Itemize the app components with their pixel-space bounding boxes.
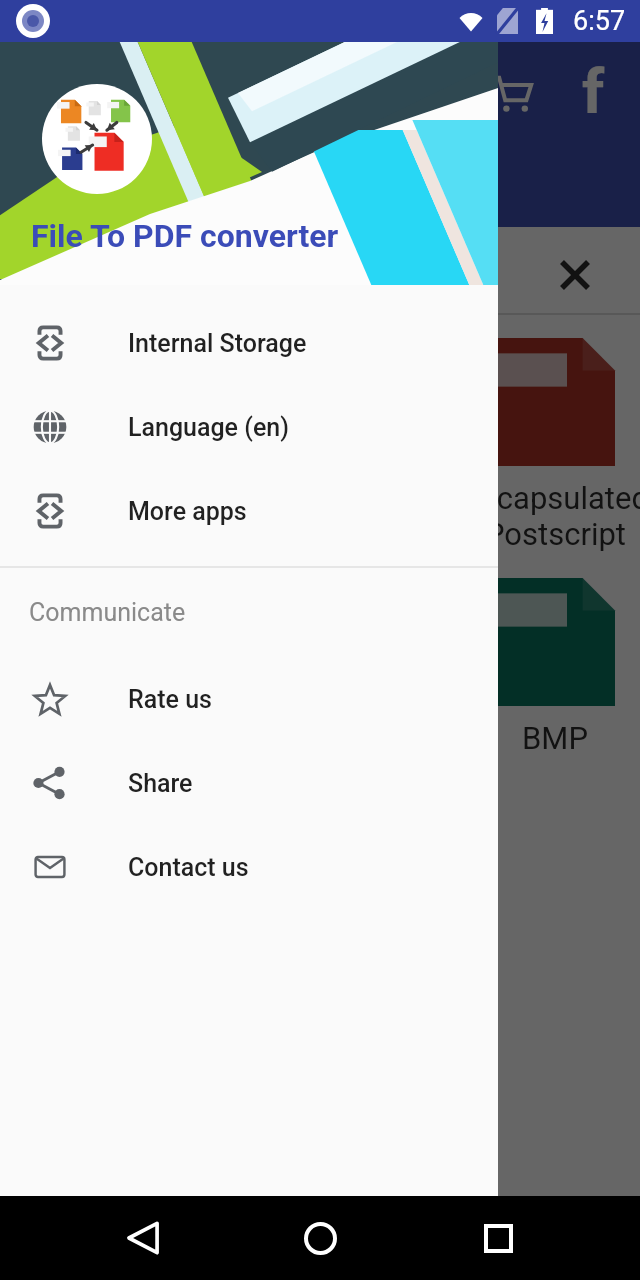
staticText: Internal Storage (128, 329, 307, 358)
staticText: Search file type (36, 252, 254, 290)
button[interactable]: Share (0, 741, 498, 825)
button[interactable]: Shop (476, 57, 548, 129)
button[interactable]: Internal Storage (0, 301, 498, 385)
button[interactable]: Clear (545, 245, 605, 305)
staticText: Convert files to PDF and images (36, 120, 353, 204)
button[interactable]: Recents (463, 1203, 533, 1273)
staticText: Contact us (128, 853, 249, 882)
staticText: Encapsulated Postscript (462, 480, 640, 552)
button[interactable]: Encapsulated Postscript (455, 323, 640, 552)
staticText: f (582, 55, 605, 127)
staticText: More apps (128, 497, 247, 526)
button[interactable]: Home (285, 1203, 355, 1273)
staticText: Communicate (29, 598, 186, 627)
button[interactable]: Rate us (0, 657, 498, 741)
button[interactable]: BMP (455, 563, 640, 756)
button[interactable]: Language (en) (0, 385, 498, 469)
button[interactable]: More apps (0, 469, 498, 553)
staticText: Share (128, 769, 193, 798)
staticText: Rate us (128, 685, 212, 714)
staticText: File To PDF converter (31, 217, 339, 255)
staticText: Language (en) (128, 413, 289, 442)
staticText: BMP (522, 720, 588, 756)
staticText: 6:57 (573, 5, 626, 37)
button[interactable]: Back (108, 1203, 178, 1273)
button[interactable]: Contact us (0, 825, 498, 909)
button[interactable]: Facebook (557, 55, 629, 127)
